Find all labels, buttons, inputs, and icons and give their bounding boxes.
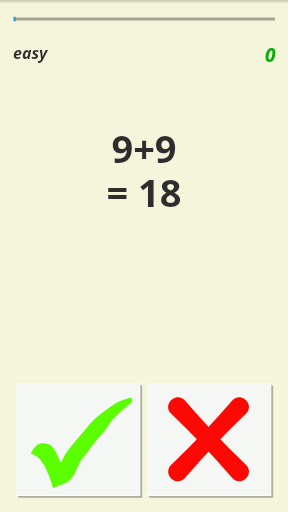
staticText: 9+9 (0, 122, 288, 174)
staticText: = 18 (0, 166, 288, 218)
staticText: 0 (265, 42, 276, 68)
button[interactable]: Wrong (147, 383, 274, 499)
button[interactable]: Correct (16, 383, 143, 499)
staticText: easy (13, 42, 48, 64)
